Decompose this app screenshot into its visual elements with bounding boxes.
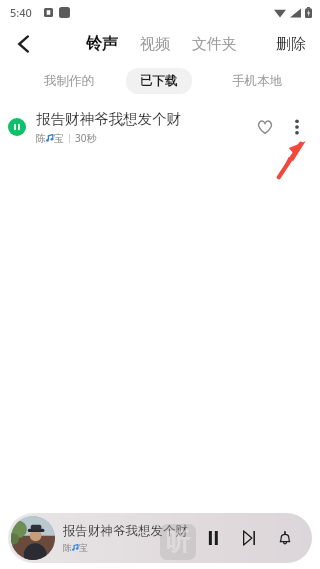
button[interactable]: 文件夹 bbox=[188, 35, 241, 54]
staticText: 手机本地 bbox=[232, 73, 282, 89]
staticText: 30秒 bbox=[75, 131, 97, 145]
other: Pause bbox=[8, 118, 26, 136]
staticText: 已下载 bbox=[140, 73, 178, 89]
button[interactable]: 我制作的 bbox=[34, 68, 104, 94]
button[interactable]: 铃声 bbox=[82, 34, 122, 54]
staticText: 视频 bbox=[140, 35, 170, 54]
button[interactable]: Pause bbox=[0, 104, 320, 150]
staticText: 文件夹 bbox=[192, 35, 237, 54]
staticText: 报告财神爷我想发个财 bbox=[63, 523, 188, 539]
button[interactable]: Back bbox=[4, 24, 44, 64]
staticText: 陈 bbox=[63, 542, 72, 553]
staticText: 听 bbox=[166, 527, 190, 557]
staticText: 我制作的 bbox=[44, 73, 94, 89]
button[interactable]: Next track bbox=[234, 523, 264, 553]
staticText: 宝 bbox=[79, 542, 88, 553]
button[interactable]: More options bbox=[282, 112, 312, 142]
button[interactable]: 已下载 bbox=[126, 68, 192, 94]
staticText: 报告财神爷我想发个财 bbox=[36, 110, 181, 128]
button[interactable]: 手机本地 bbox=[222, 68, 292, 94]
button[interactable]: 删除 bbox=[262, 27, 320, 62]
button[interactable]: 报告财神爷我想发个财 bbox=[8, 513, 312, 563]
button[interactable]: Set as ringtone bbox=[270, 523, 300, 553]
staticText: 铃声 bbox=[86, 34, 118, 54]
staticText: 5:40 bbox=[10, 5, 32, 20]
staticText: 陈 bbox=[36, 132, 46, 145]
button[interactable]: 视频 bbox=[136, 35, 174, 54]
staticText: 删除 bbox=[276, 35, 306, 54]
staticText: 宝 bbox=[54, 132, 64, 145]
button[interactable]: Favorite bbox=[248, 110, 282, 144]
button[interactable]: Pause bbox=[198, 523, 228, 553]
